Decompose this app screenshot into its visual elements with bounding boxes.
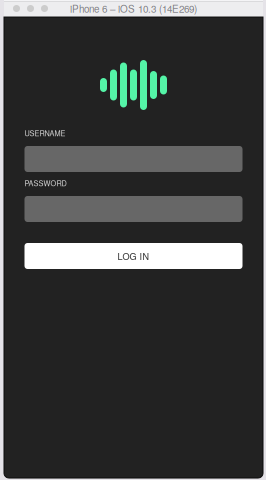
staticText: LOG IN [117,249,149,262]
staticText: PASSWORD [24,178,66,188]
staticText: iPhone 6 – iOS 10.3 (14E269) [70,1,197,15]
staticText: USERNAME [24,128,65,138]
button[interactable]: LOG IN [24,243,242,269]
